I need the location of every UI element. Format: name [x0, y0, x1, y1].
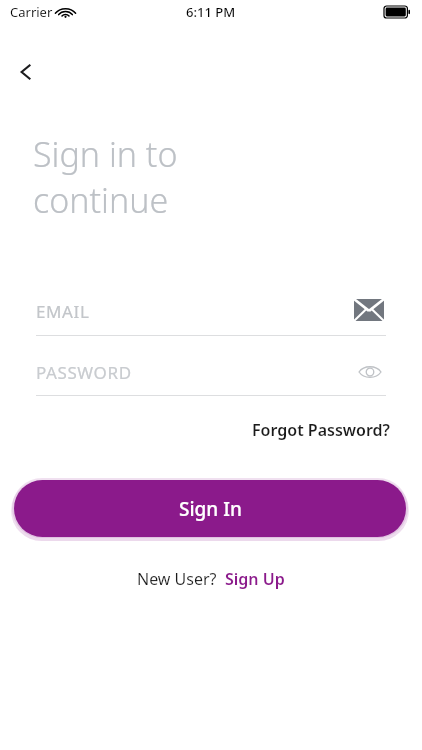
button[interactable]: Sign Up	[225, 568, 285, 590]
button[interactable]: Sign In	[14, 480, 406, 537]
staticText: Carrier	[10, 3, 53, 21]
staticText: Sign In	[179, 496, 242, 522]
staticText: Sign in to	[33, 131, 178, 177]
button[interactable]: Email	[352, 293, 386, 327]
staticText: continue	[33, 177, 169, 223]
staticText: Sign Up	[225, 568, 285, 590]
staticText: PASSWORD	[36, 361, 132, 384]
button[interactable]: Show password	[354, 356, 386, 388]
button[interactable]: PASSWORD	[36, 353, 386, 395]
staticText: Forgot Password?	[252, 419, 390, 441]
staticText: EMAIL	[36, 300, 90, 323]
button[interactable]: EMAIL	[36, 292, 386, 336]
button[interactable]: Forgot Password?	[220, 415, 390, 445]
staticText: New User?	[137, 568, 217, 590]
button[interactable]: Back	[6, 52, 46, 92]
staticText: 6:11 PM	[186, 3, 236, 21]
